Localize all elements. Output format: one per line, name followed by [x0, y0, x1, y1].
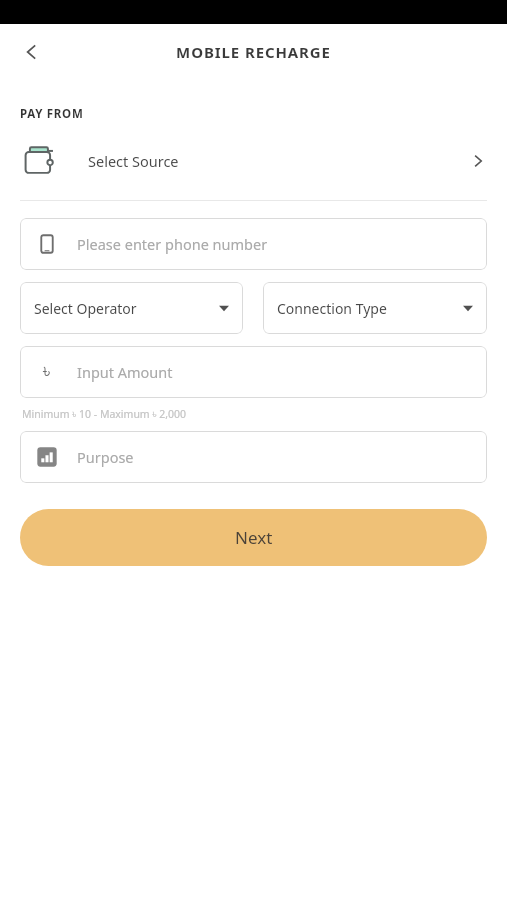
button[interactable]: ৳ [20, 346, 487, 398]
staticText: Please enter phone number [77, 234, 268, 254]
staticText: Purpose [77, 447, 134, 467]
staticText: Select Operator [34, 299, 137, 318]
button[interactable]: Select Operator [20, 282, 243, 334]
staticText: Input Amount [77, 362, 173, 382]
staticText: MOBILE RECHARGE [176, 42, 331, 62]
staticText: PAY FROM [20, 106, 84, 122]
button[interactable]: Connection Type [263, 282, 487, 334]
staticText: ৳ [43, 363, 51, 382]
button[interactable]: Back [10, 30, 54, 74]
button[interactable]: Select Source [0, 134, 507, 188]
button[interactable]: Next [20, 509, 487, 566]
staticText: Minimum ৳ 10 - Maximum ৳ 2,000 [22, 407, 187, 421]
button[interactable]: Please enter phone number [20, 218, 487, 270]
staticText: Select Source [88, 151, 179, 171]
staticText: Next [235, 526, 273, 549]
staticText: Connection Type [277, 299, 387, 318]
button[interactable]: Purpose [20, 431, 487, 483]
